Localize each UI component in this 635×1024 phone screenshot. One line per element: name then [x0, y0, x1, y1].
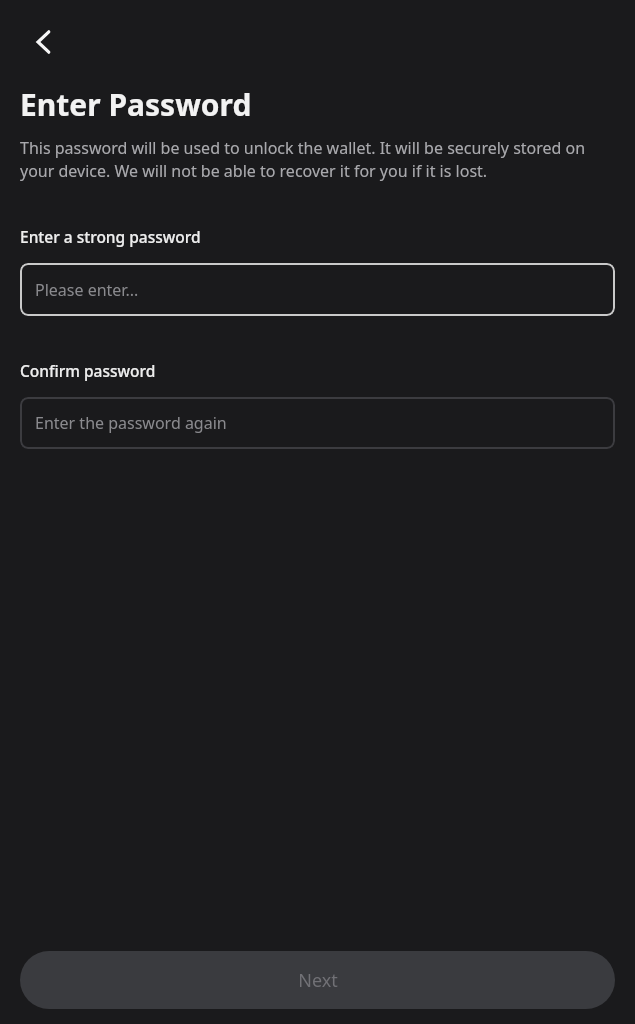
staticText: Please enter... [35, 279, 139, 301]
button[interactable]: Enter the password again [20, 397, 615, 449]
button[interactable]: Next [20, 951, 615, 1009]
staticText: This password will be used to unlock the… [20, 137, 617, 182]
staticText: Confirm password [20, 360, 156, 381]
button[interactable]: Back [16, 14, 72, 70]
staticText: Enter a strong password [20, 226, 201, 247]
button[interactable]: Please enter... [20, 263, 615, 316]
staticText: Enter Password [20, 84, 252, 125]
staticText: Next [298, 968, 338, 993]
staticText: Enter the password again [35, 412, 227, 434]
